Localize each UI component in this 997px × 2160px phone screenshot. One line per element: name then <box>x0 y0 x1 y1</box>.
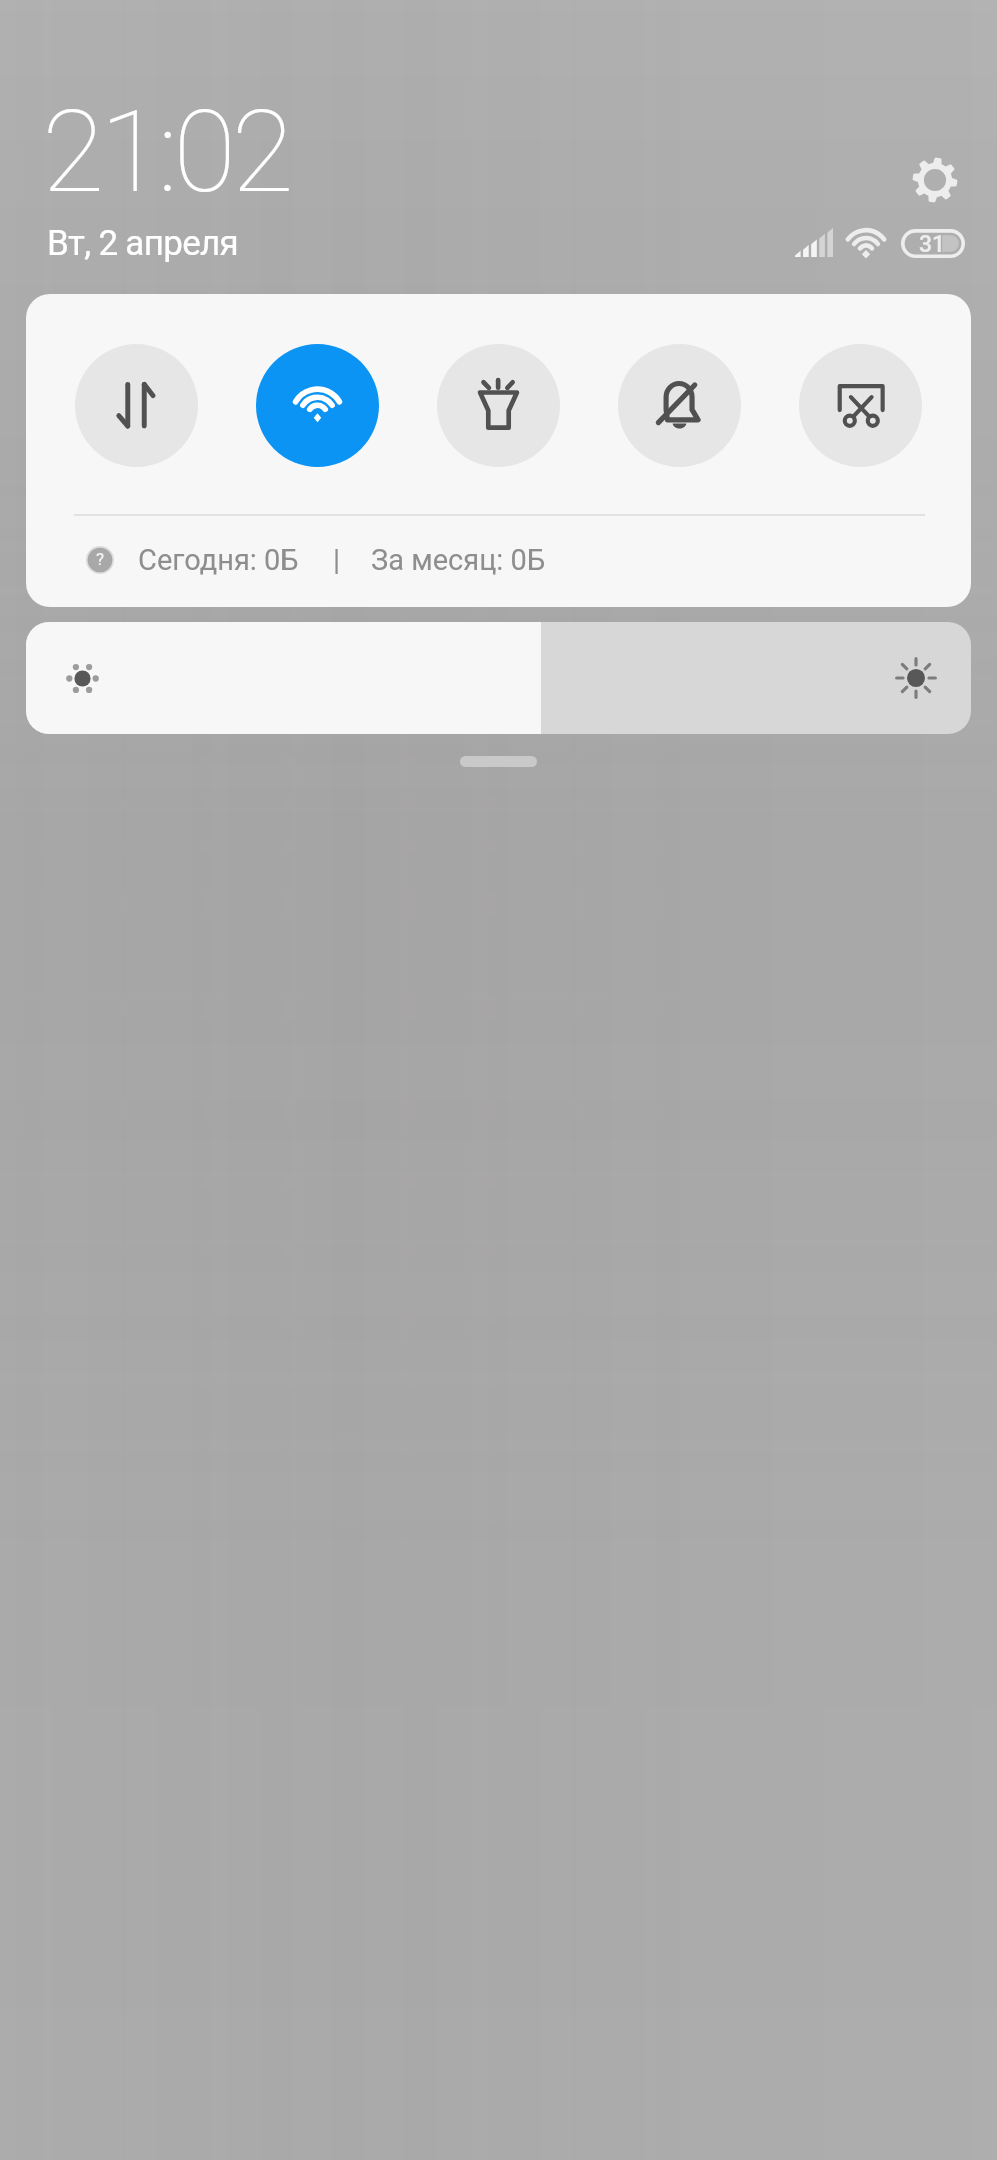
staticText: Вт, 2 апреля <box>47 223 239 264</box>
staticText: За месяц: 0Б <box>371 543 546 577</box>
button[interactable]: Wi-Fi <box>256 344 379 467</box>
staticText: | <box>333 543 341 577</box>
staticText: Сегодня: 0Б <box>138 543 299 577</box>
button[interactable]: Flashlight <box>437 344 560 467</box>
staticText: 21:02 <box>42 85 290 219</box>
button[interactable]: Screenshot <box>799 344 922 467</box>
staticText: ? <box>96 549 105 569</box>
button[interactable]: Data usage info <box>86 546 114 574</box>
button[interactable]: Brightness <box>26 622 971 734</box>
button[interactable]: Settings <box>905 150 965 210</box>
button[interactable]: Silent mode <box>618 344 741 467</box>
staticText: 31 <box>919 231 946 258</box>
button[interactable]: Mobile data <box>75 344 198 467</box>
